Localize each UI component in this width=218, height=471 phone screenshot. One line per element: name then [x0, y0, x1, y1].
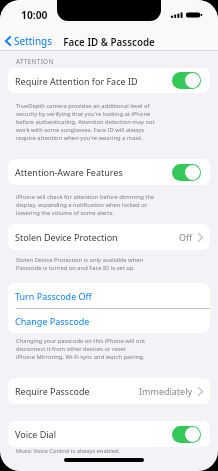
staticText: iPhone will check for attention before d…	[16, 193, 206, 217]
button[interactable]: Attention-Aware Features	[8, 159, 210, 185]
staticText: 10:00	[21, 8, 48, 22]
staticText: Changing your passcode on this iPhone wi…	[16, 337, 206, 361]
staticText: TrueDepth camera provides an additional …	[16, 102, 206, 142]
staticText: Settings	[14, 34, 53, 48]
staticText: Face ID & Passcode	[0, 36, 218, 49]
button[interactable]: Require Passcode	[8, 378, 210, 404]
staticText: Require Passcode	[15, 385, 90, 397]
staticText: Turn Passcode Off	[15, 290, 92, 302]
button[interactable]: Change Passcode	[8, 308, 210, 333]
staticText: Music Voice Control is always enabled.	[16, 447, 206, 455]
staticText: Require Attention for Face ID	[15, 75, 138, 87]
staticText: Stolen Device Protection	[15, 231, 118, 243]
staticText: Immediately	[139, 385, 193, 397]
button[interactable]	[172, 164, 201, 181]
staticText: ATTENTION	[16, 57, 54, 66]
staticText: Attention-Aware Features	[15, 166, 123, 178]
button[interactable]: Stolen Device Protection	[8, 224, 210, 250]
button[interactable]: Settings	[5, 34, 53, 48]
button[interactable]: Turn Passcode Off	[8, 283, 210, 308]
button[interactable]	[172, 426, 201, 443]
staticText: Off	[179, 231, 193, 243]
staticText: Voice Dial	[15, 428, 56, 440]
staticText: Change Passcode	[15, 315, 90, 327]
button[interactable]: Require Attention for Face ID	[8, 68, 210, 93]
staticText: Stolen Device Protection is only availab…	[16, 256, 206, 272]
button[interactable]	[172, 72, 201, 89]
button[interactable]: Voice Dial	[8, 421, 210, 447]
